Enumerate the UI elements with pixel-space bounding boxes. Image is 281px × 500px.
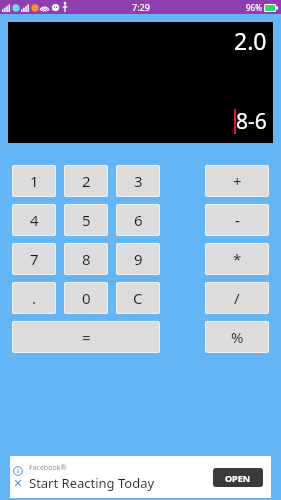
staticText: 7:29: [132, 1, 150, 13]
button[interactable]: 7: [13, 244, 55, 274]
button[interactable]: -: [206, 205, 268, 235]
button[interactable]: Close ad: [13, 478, 23, 488]
button[interactable]: 6: [117, 205, 159, 235]
staticText: 5: [82, 210, 91, 230]
staticText: 6: [134, 210, 143, 230]
button[interactable]: /: [206, 283, 268, 313]
staticText: +: [233, 171, 242, 191]
staticText: -: [235, 210, 240, 230]
staticText: 4: [30, 210, 39, 230]
button[interactable]: 0: [65, 283, 107, 313]
button[interactable]: C: [117, 283, 159, 313]
staticText: 96%: [246, 2, 262, 13]
staticText: 8: [82, 249, 91, 269]
staticText: 2.0: [234, 25, 267, 56]
staticText: /: [234, 288, 240, 308]
staticText: =: [82, 327, 91, 347]
button[interactable]: +: [206, 166, 268, 196]
staticText: 8-6: [236, 107, 267, 136]
staticText: Facebook®: [29, 463, 67, 473]
button[interactable]: 1: [13, 166, 55, 196]
button[interactable]: %: [206, 322, 268, 352]
staticText: 1: [30, 171, 39, 191]
staticText: .: [32, 288, 37, 308]
staticText: %: [231, 327, 244, 347]
staticText: 2: [82, 171, 91, 191]
staticText: *: [233, 249, 242, 269]
staticText: 7: [30, 249, 39, 269]
button[interactable]: 9: [117, 244, 159, 274]
staticText: 0: [82, 288, 91, 308]
button[interactable]: 8: [65, 244, 107, 274]
button[interactable]: 5: [65, 205, 107, 235]
staticText: C: [133, 288, 143, 308]
staticText: Start Reacting Today: [29, 474, 155, 492]
button[interactable]: 3: [117, 166, 159, 196]
staticText: 3: [134, 171, 143, 191]
button[interactable]: 4: [13, 205, 55, 235]
button[interactable]: OPEN: [213, 468, 263, 487]
staticText: OPEN: [225, 472, 251, 484]
staticText: 9: [134, 249, 143, 269]
button[interactable]: Ad information: [13, 466, 23, 476]
button[interactable]: *: [206, 244, 268, 274]
button[interactable]: .: [13, 283, 55, 313]
button[interactable]: =: [13, 322, 159, 352]
button[interactable]: 2: [65, 166, 107, 196]
